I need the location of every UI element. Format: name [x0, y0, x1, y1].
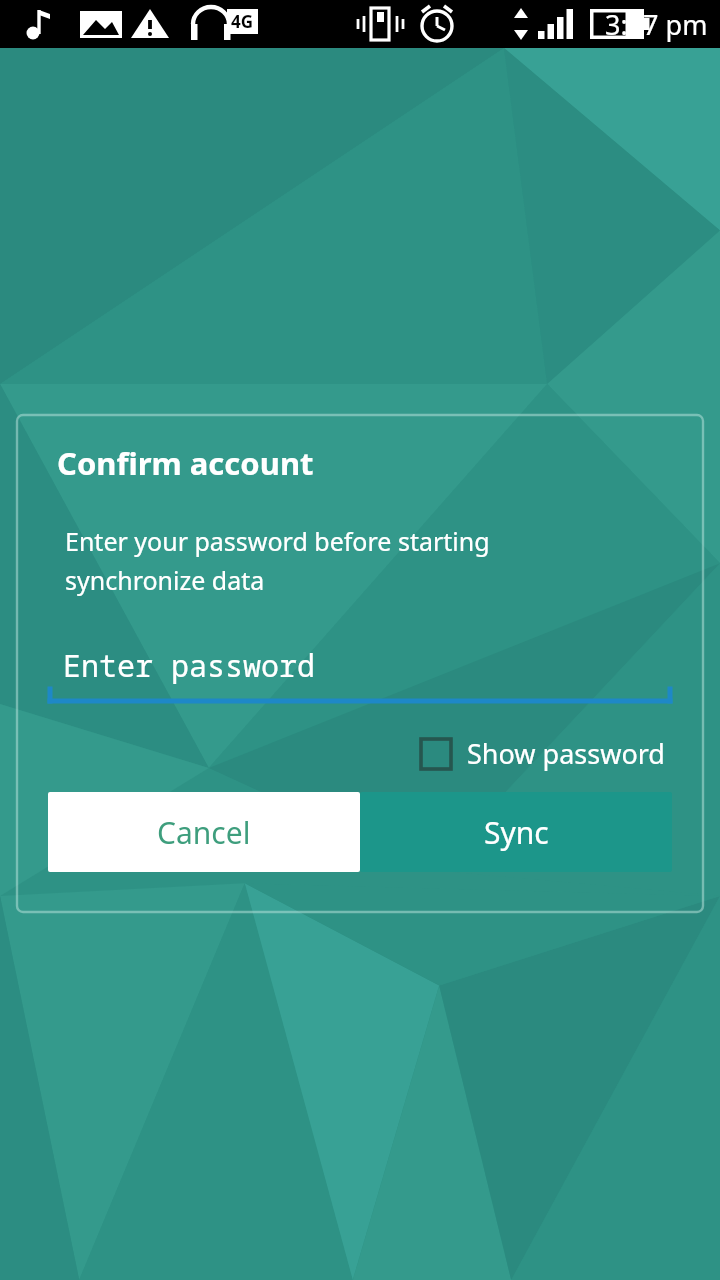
staticText: Enter password	[63, 645, 315, 686]
button[interactable]: Cancel	[48, 792, 360, 872]
staticText: Show password	[467, 735, 665, 772]
button[interactable]: Show password	[415, 731, 669, 776]
staticText: 3:37 pm	[605, 6, 708, 43]
staticText: Enter your password before starting	[65, 524, 490, 558]
staticText: Confirm account	[57, 442, 314, 484]
staticText: Cancel	[157, 812, 251, 853]
staticText: synchronize data	[65, 563, 265, 597]
staticText: Sync	[484, 812, 549, 853]
staticText: 4G	[231, 10, 254, 33]
button[interactable]: Sync	[360, 792, 672, 872]
button[interactable]: Enter password	[17, 641, 703, 713]
